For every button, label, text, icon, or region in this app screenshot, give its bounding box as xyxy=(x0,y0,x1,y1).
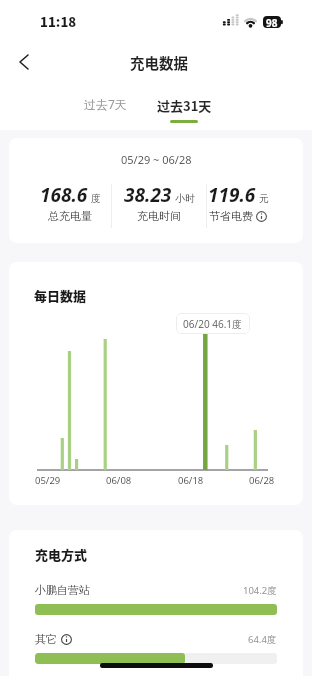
button[interactable]: 38.23 xyxy=(109,182,209,223)
staticText: 06/18 xyxy=(178,474,204,487)
staticText: 节省电费 xyxy=(209,209,253,223)
staticText: 每日数据 xyxy=(34,286,87,305)
staticText: 104.2度 xyxy=(243,584,277,597)
staticText: 119.6 xyxy=(208,182,256,208)
button[interactable]: 小鹏自营站 xyxy=(35,583,277,597)
staticText: 小鹏自营站 xyxy=(35,583,90,597)
staticText: 过去31天 xyxy=(157,96,212,115)
staticText: 充电时间 xyxy=(137,209,181,223)
button[interactable]: 过去7天 xyxy=(70,96,140,112)
button[interactable] xyxy=(10,49,36,75)
staticText: 06/08 xyxy=(106,474,132,487)
button[interactable]: 168.6 xyxy=(20,182,120,223)
staticText: 06/28 xyxy=(249,474,275,487)
staticText: 过去7天 xyxy=(84,96,127,112)
staticText: 64.4度 xyxy=(248,633,277,646)
staticText: 06/20 46.1度 xyxy=(183,317,243,331)
staticText: 度 xyxy=(91,192,101,205)
button[interactable]: 119.6 xyxy=(188,182,288,223)
staticText: 总充电量 xyxy=(48,209,92,223)
staticText: 元 xyxy=(259,192,269,205)
staticText: 充电数据 xyxy=(130,52,188,73)
staticText: 05/29 xyxy=(35,474,61,487)
staticText: 充电方式 xyxy=(35,545,88,564)
button[interactable]: 其它 xyxy=(35,632,277,646)
staticText: 98 xyxy=(266,16,278,28)
staticText: 38.23 xyxy=(124,182,172,208)
staticText: 小时 xyxy=(175,192,195,205)
staticText: 其它 xyxy=(35,632,57,646)
staticText: 11:18 xyxy=(40,12,77,31)
staticText: 05/29 ~ 06/28 xyxy=(121,152,192,167)
staticText: 168.6 xyxy=(40,182,88,208)
button[interactable]: 过去31天 xyxy=(149,96,219,123)
